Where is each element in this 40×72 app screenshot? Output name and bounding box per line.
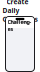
staticText: Daily Challenges (2, 6, 37, 24)
staticText: Challenges (7, 18, 31, 33)
staticText: Join And Create (6, 0, 33, 6)
staticText: Challenges (12, 20, 28, 24)
